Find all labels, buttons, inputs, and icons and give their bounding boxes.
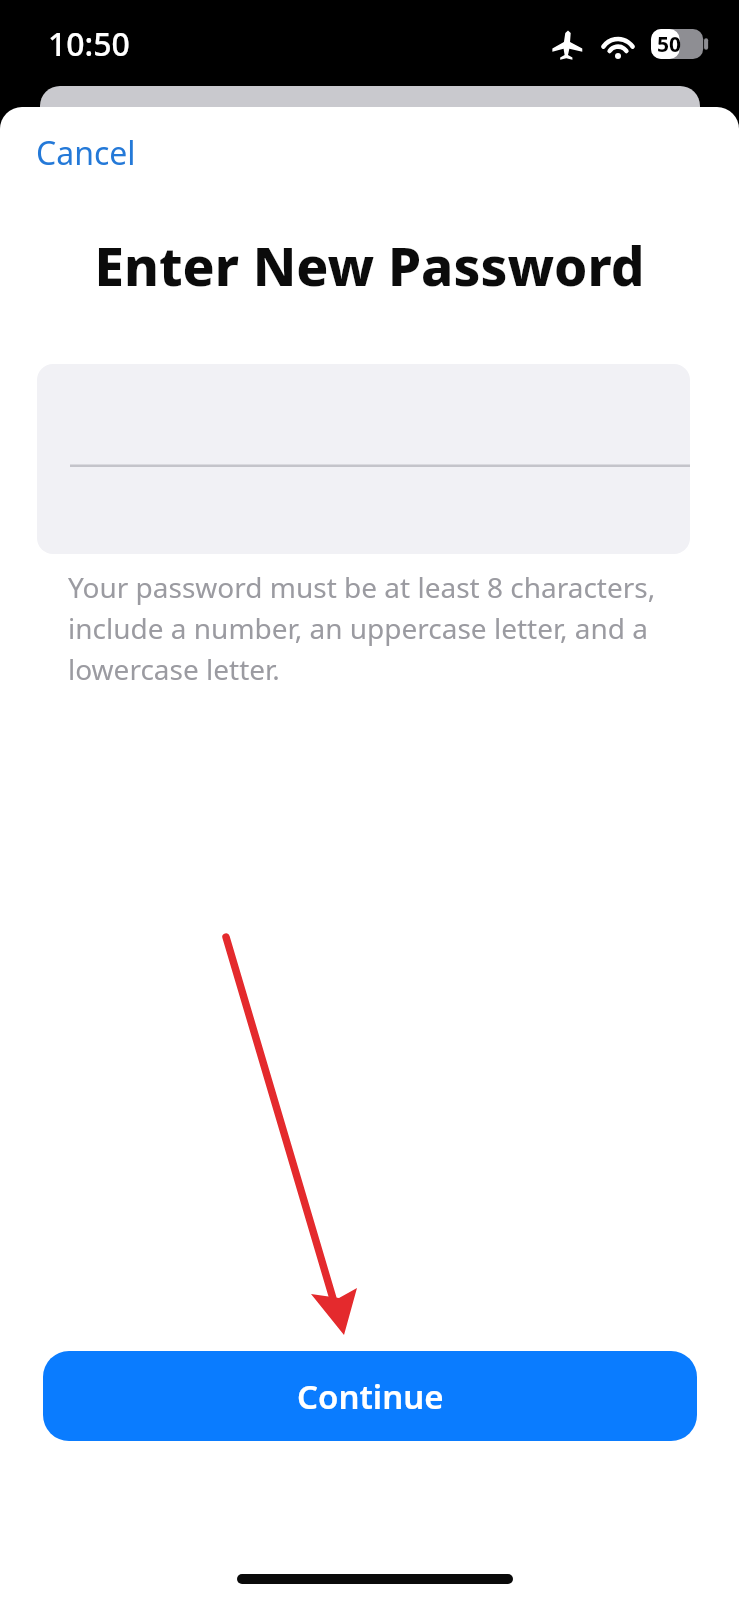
button[interactable] bbox=[37, 364, 690, 554]
staticText: Enter New Password bbox=[0, 229, 739, 301]
staticText: 50 bbox=[657, 30, 682, 59]
button[interactable]: Cancel bbox=[20, 121, 152, 185]
staticText: Your password must be at least 8 charact… bbox=[68, 568, 656, 688]
button[interactable]: Continue bbox=[43, 1351, 697, 1441]
staticText: Cancel bbox=[36, 131, 136, 175]
staticText: 10:50 bbox=[48, 22, 130, 66]
staticText: Continue bbox=[297, 1374, 444, 1419]
